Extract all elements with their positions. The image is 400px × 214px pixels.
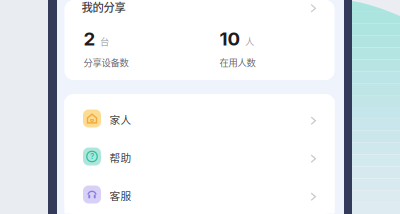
staticText: ? [90, 151, 94, 161]
staticText: 家人 [109, 112, 131, 127]
staticText: 我的分享 [81, 0, 125, 15]
button[interactable]: 客服 [64, 175, 334, 213]
staticText: 10 [219, 27, 240, 50]
staticText: 在用人数 [219, 55, 255, 69]
staticText: 帮助 [109, 150, 131, 165]
staticText: 客服 [109, 188, 131, 203]
staticText: 台 [100, 34, 109, 48]
button[interactable]: 家人 [64, 99, 334, 137]
staticText: 分享设备数 [83, 55, 128, 69]
staticText: 2 [83, 27, 95, 50]
button[interactable]: ? [64, 137, 334, 175]
button[interactable]: 我的分享 [64, 0, 334, 80]
staticText: 人 [245, 34, 254, 48]
